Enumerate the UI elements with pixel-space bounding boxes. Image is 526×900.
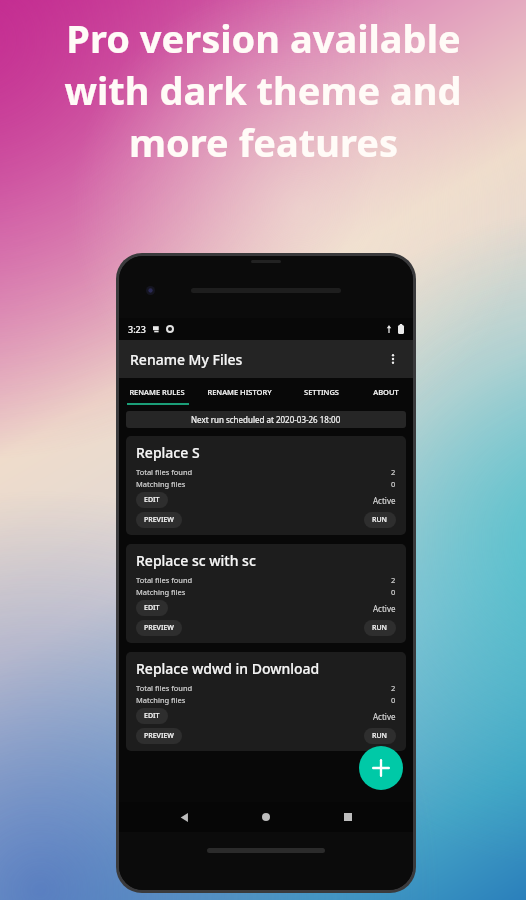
staticText: 2 <box>391 575 396 585</box>
staticText: Rename My Files <box>130 350 243 369</box>
button[interactable]: Replace wdwd in Download <box>126 652 406 751</box>
staticText: Total files found <box>136 683 193 693</box>
button[interactable]: Add rule <box>359 746 403 790</box>
staticText: Next run scheduled at 2020-03-26 18:00 <box>191 414 341 425</box>
button[interactable]: Home <box>249 802 283 832</box>
staticText: RUN <box>372 623 388 633</box>
button[interactable]: RUN <box>364 620 396 636</box>
staticText: Matching files <box>136 479 186 489</box>
staticText: 2 <box>391 683 396 693</box>
staticText: Replace S <box>136 443 200 462</box>
button[interactable]: RUN <box>364 512 396 528</box>
staticText: 0 <box>391 587 396 597</box>
staticText: Active <box>373 495 396 506</box>
staticText: RUN <box>372 515 388 525</box>
staticText: RENAME HISTORY <box>207 387 272 397</box>
button[interactable]: More options <box>378 344 408 374</box>
button[interactable]: Recents <box>331 802 365 832</box>
button[interactable]: RENAME RULES <box>119 378 195 405</box>
staticText: RUN <box>372 731 388 741</box>
button[interactable]: Replace S <box>126 436 406 535</box>
button[interactable]: PREVIEW <box>136 620 182 636</box>
button[interactable]: SETTINGS <box>284 378 359 405</box>
staticText: Total files found <box>136 467 193 477</box>
staticText: PREVIEW <box>144 515 174 525</box>
staticText: 3:23 <box>128 323 146 335</box>
button[interactable]: EDIT <box>136 600 168 616</box>
button[interactable]: RENAME HISTORY <box>195 378 284 405</box>
staticText: Pro version available <box>66 12 461 64</box>
button[interactable]: EDIT <box>136 708 168 724</box>
staticText: more features <box>129 116 398 168</box>
staticText: ABOUT <box>373 387 399 397</box>
staticText: 0 <box>391 479 396 489</box>
staticText: EDIT <box>144 603 160 613</box>
staticText: Matching files <box>136 587 186 597</box>
staticText: Total files found <box>136 575 193 585</box>
button[interactable]: Back <box>167 802 201 832</box>
staticText: 0 <box>391 695 396 705</box>
staticText: 2 <box>391 467 396 477</box>
staticText: Replace sc with sc <box>136 551 256 570</box>
staticText: PREVIEW <box>144 731 174 741</box>
staticText: Replace wdwd in Download <box>136 659 320 678</box>
button[interactable]: EDIT <box>136 492 168 508</box>
staticText: EDIT <box>144 495 160 505</box>
button[interactable]: PREVIEW <box>136 512 182 528</box>
staticText: EDIT <box>144 711 160 721</box>
staticText: SETTINGS <box>304 387 339 397</box>
button[interactable]: Next run scheduled at 2020-03-26 18:00 <box>126 411 406 428</box>
staticText: Active <box>373 603 396 614</box>
staticText: Matching files <box>136 695 186 705</box>
staticText: with dark theme and <box>64 64 462 116</box>
button[interactable]: ABOUT <box>359 378 413 405</box>
staticText: RENAME RULES <box>129 387 185 397</box>
button[interactable]: Replace sc with sc <box>126 544 406 643</box>
staticText: PREVIEW <box>144 623 174 633</box>
button[interactable]: RUN <box>364 728 396 744</box>
button[interactable]: PREVIEW <box>136 728 182 744</box>
staticText: Active <box>373 711 396 722</box>
